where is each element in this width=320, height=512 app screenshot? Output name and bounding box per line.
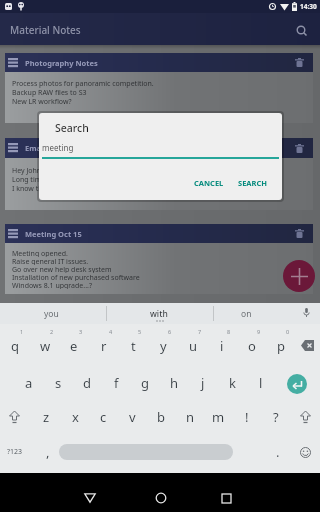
button[interactable]: c: [90, 405, 116, 429]
staticText: New LR workflow?: [12, 97, 72, 106]
button[interactable]: o: [239, 334, 265, 358]
button[interactable]: ?123: [0, 440, 30, 464]
button[interactable]: m: [205, 405, 231, 429]
staticText: u: [189, 337, 198, 355]
button[interactable]: v: [119, 405, 145, 429]
staticText: 14:30: [300, 2, 317, 11]
button[interactable]: j: [190, 371, 216, 395]
staticText: 8: [227, 328, 231, 335]
staticText: b: [157, 408, 165, 426]
staticText: t: [131, 337, 136, 355]
staticText: a: [25, 374, 33, 392]
button[interactable]: .: [268, 440, 288, 464]
staticText: Meeting Oct 15: [25, 229, 82, 239]
staticText: Raise general IT issues.: [12, 257, 89, 265]
staticText: Photography Notes: [25, 58, 98, 68]
button[interactable]: SEARCH: [234, 174, 271, 192]
staticText: .: [276, 443, 280, 461]
button[interactable]: CANCEL: [190, 174, 228, 192]
staticText: q: [11, 337, 19, 355]
staticText: o: [248, 337, 256, 355]
button[interactable]: u: [180, 334, 206, 358]
button[interactable]: f: [103, 371, 129, 395]
button[interactable]: t: [120, 334, 146, 358]
button[interactable]: k: [219, 371, 245, 395]
button[interactable]: [59, 444, 233, 460]
staticText: Installation of new purchased software: [12, 273, 140, 281]
button[interactable]: [149, 486, 173, 510]
button[interactable]: Photography Notes: [5, 53, 313, 72]
button[interactable]: s: [45, 371, 71, 395]
button[interactable]: Meeting Oct 15: [5, 224, 313, 243]
staticText: v: [129, 408, 136, 426]
staticText: ?123: [7, 447, 23, 457]
button[interactable]: [283, 260, 315, 292]
staticText: f: [114, 374, 119, 392]
staticText: s: [55, 374, 62, 392]
button[interactable]: g: [132, 371, 158, 395]
staticText: 1: [20, 328, 24, 335]
button[interactable]: b: [148, 405, 174, 429]
button[interactable]: q: [2, 334, 28, 358]
button[interactable]: with: [150, 308, 168, 320]
staticText: 0: [286, 328, 290, 335]
button[interactable]: Email Bob: [5, 138, 313, 158]
staticText: 4: [109, 328, 113, 335]
button[interactable]: [295, 333, 320, 357]
button[interactable]: [295, 144, 304, 153]
button[interactable]: r: [91, 334, 117, 358]
staticText: Go over new help desk system: [12, 265, 112, 273]
staticText: h: [170, 374, 179, 392]
staticText: Long time no see, let's catch up soon.: [12, 175, 136, 184]
button[interactable]: d: [74, 371, 100, 395]
staticText: Search: [55, 121, 89, 135]
staticText: m: [212, 408, 225, 426]
staticText: Material Notes: [10, 23, 81, 37]
button[interactable]: x: [62, 405, 88, 429]
button[interactable]: you: [44, 308, 59, 320]
button[interactable]: [287, 374, 307, 394]
button[interactable]: [300, 447, 311, 458]
button[interactable]: p: [268, 334, 294, 358]
button[interactable]: ?: [263, 405, 289, 429]
staticText: Email Bob: [25, 143, 62, 153]
staticText: g: [141, 374, 149, 392]
button[interactable]: ,: [38, 440, 58, 464]
button[interactable]: [214, 486, 238, 510]
button[interactable]: l: [248, 371, 274, 395]
staticText: w: [40, 337, 51, 355]
button[interactable]: [2, 405, 26, 429]
button[interactable]: [296, 25, 308, 37]
staticText: SEARCH: [238, 178, 267, 188]
staticText: e: [70, 337, 78, 355]
staticText: Meeting opened.: [12, 249, 68, 257]
button[interactable]: on: [241, 308, 252, 320]
staticText: d: [83, 374, 91, 392]
staticText: ?: [273, 408, 279, 426]
staticText: CANCEL: [194, 178, 224, 188]
staticText: Hey John, how have you been lately?: [12, 166, 132, 175]
button[interactable]: e: [61, 334, 87, 358]
button[interactable]: [295, 58, 304, 67]
staticText: p: [277, 337, 285, 355]
staticText: l: [259, 374, 263, 392]
button[interactable]: w: [32, 334, 58, 358]
button[interactable]: !: [234, 405, 260, 429]
staticText: 7: [198, 328, 202, 335]
button[interactable]: n: [177, 405, 203, 429]
button[interactable]: [78, 486, 102, 510]
staticText: 3: [79, 328, 83, 335]
button[interactable]: [295, 229, 304, 238]
button[interactable]: y: [150, 334, 176, 358]
button[interactable]: [302, 308, 311, 317]
staticText: 6: [168, 328, 172, 335]
staticText: 2: [50, 328, 54, 335]
button[interactable]: i: [209, 334, 235, 358]
staticText: n: [186, 408, 195, 426]
staticText: Windows 8.1 upgrade...?: [12, 281, 92, 289]
staticText: Backup RAW files to S3: [12, 88, 87, 97]
button[interactable]: h: [161, 371, 187, 395]
button[interactable]: [293, 405, 317, 429]
button[interactable]: z: [33, 405, 59, 429]
button[interactable]: a: [16, 371, 42, 395]
